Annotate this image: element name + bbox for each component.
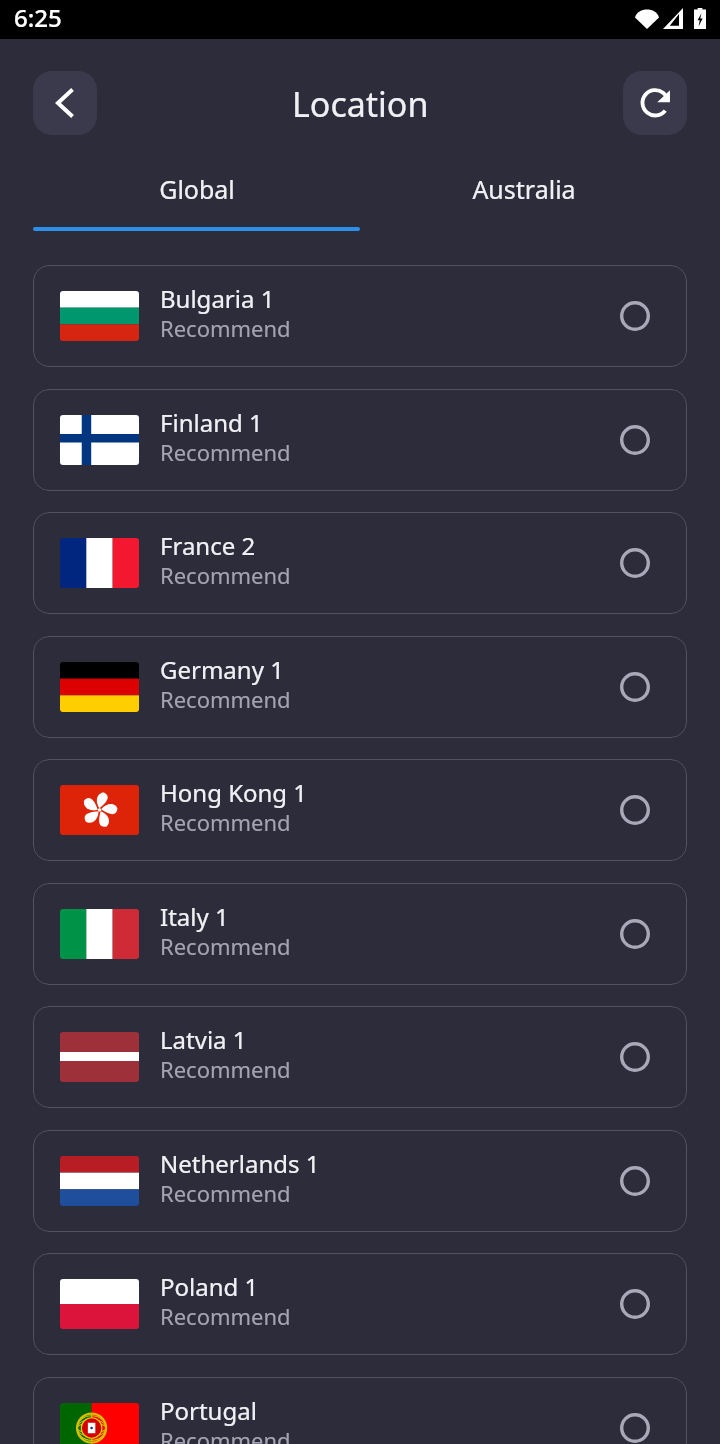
button[interactable]: Australia — [360, 163, 687, 215]
staticText: Recommend — [160, 1301, 291, 1331]
staticText: Australia — [472, 172, 576, 206]
button[interactable]: Bulgaria 1 — [33, 265, 687, 367]
staticText: Italy 1 — [160, 900, 229, 933]
button[interactable]: Hong Kong 1 — [33, 759, 687, 861]
button[interactable]: Poland 1 — [33, 1253, 687, 1355]
staticText: Recommend — [160, 1178, 291, 1208]
staticText: Recommend — [160, 560, 291, 590]
staticText: Hong Kong 1 — [160, 776, 308, 809]
staticText: France 2 — [160, 529, 256, 562]
staticText: 6:25 — [14, 1, 62, 34]
button[interactable]: Finland 1 — [33, 389, 687, 491]
staticText: Netherlands 1 — [160, 1147, 320, 1180]
staticText: Location — [292, 81, 429, 127]
staticText: Recommend — [160, 684, 291, 714]
staticText: Recommend — [160, 931, 291, 961]
staticText: Recommend — [160, 437, 291, 467]
staticText: Recommend — [160, 1425, 291, 1444]
button[interactable]: Netherlands 1 — [33, 1130, 687, 1232]
button[interactable]: Global — [33, 163, 360, 215]
staticText: Latvia 1 — [160, 1023, 247, 1056]
button[interactable]: Refresh — [623, 71, 687, 135]
button[interactable]: Back — [33, 71, 97, 135]
staticText: Germany 1 — [160, 653, 284, 686]
button[interactable]: Italy 1 — [33, 883, 687, 985]
staticText: Recommend — [160, 807, 291, 837]
button[interactable]: Latvia 1 — [33, 1006, 687, 1108]
staticText: Finland 1 — [160, 406, 263, 439]
staticText: Poland 1 — [160, 1270, 259, 1303]
button[interactable]: France 2 — [33, 512, 687, 614]
staticText: Global — [159, 172, 235, 206]
staticText: Portugal — [160, 1394, 257, 1427]
staticText: Recommend — [160, 313, 291, 343]
button[interactable]: Germany 1 — [33, 636, 687, 738]
button[interactable]: Portugal — [33, 1377, 687, 1444]
staticText: Recommend — [160, 1054, 291, 1084]
staticText: Bulgaria 1 — [160, 282, 275, 315]
